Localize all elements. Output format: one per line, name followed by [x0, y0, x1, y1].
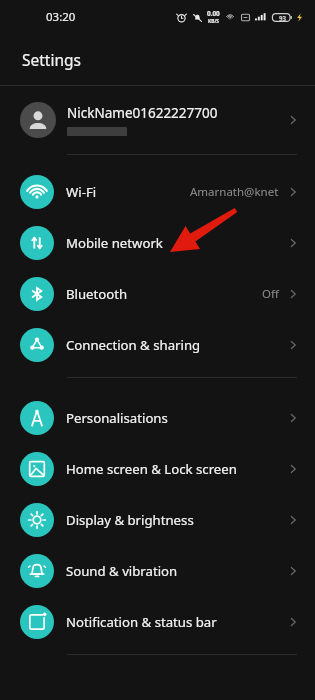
button[interactable]: Wi-Fi — [0, 166, 315, 217]
other: Open — [285, 461, 301, 477]
button[interactable]: Display & brightness — [0, 494, 315, 545]
staticText: NickName01622227700 — [67, 104, 218, 122]
other: Open — [285, 512, 301, 528]
other: Open — [285, 410, 301, 426]
staticText: KB/S — [208, 18, 220, 25]
staticText: Settings — [22, 49, 81, 70]
staticText: 03:20 — [46, 9, 76, 25]
staticText: Off — [262, 286, 279, 302]
other: Open — [285, 112, 301, 128]
button[interactable]: Connection & sharing — [0, 319, 315, 370]
button[interactable]: NickName01622227700 — [0, 86, 315, 154]
other: Open — [285, 337, 301, 353]
staticText: Home screen & Lock screen — [66, 460, 285, 478]
button[interactable]: Mobile network — [0, 217, 315, 268]
button[interactable]: Home screen & Lock screen — [0, 443, 315, 494]
staticText: 0.00 — [207, 9, 220, 18]
staticText: Notification & status bar — [66, 613, 285, 631]
other: Open — [285, 286, 301, 302]
staticText: Sound & vibration — [66, 562, 285, 580]
button[interactable]: Personalisations — [0, 392, 315, 443]
staticText: Mobile network — [66, 234, 285, 252]
staticText: Personalisations — [66, 409, 285, 427]
staticText: Bluetooth — [66, 285, 262, 303]
button[interactable]: Notification & status bar — [0, 596, 315, 647]
staticText: 93 — [279, 14, 287, 22]
button[interactable]: Bluetooth — [0, 268, 315, 319]
other: Open — [285, 235, 301, 251]
other: Open — [285, 184, 301, 200]
staticText: Amarnath@knet — [190, 184, 279, 200]
button[interactable]: Sound & vibration — [0, 545, 315, 596]
other: Open — [285, 563, 301, 579]
staticText: Display & brightness — [66, 511, 285, 529]
other: Open — [285, 614, 301, 630]
staticText: Wi-Fi — [66, 183, 190, 201]
staticText: Connection & sharing — [66, 336, 285, 354]
